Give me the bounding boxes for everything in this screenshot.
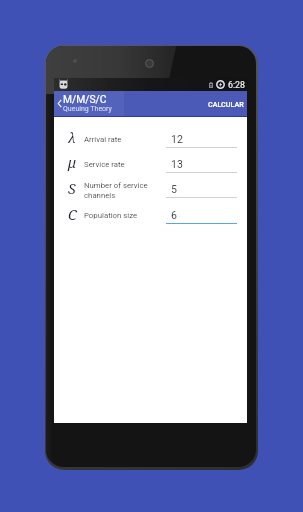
- button[interactable]: 5: [166, 183, 237, 195]
- button[interactable]: 13: [166, 158, 237, 170]
- staticText: 6:28: [228, 80, 245, 90]
- staticText: μ: [68, 153, 77, 172]
- staticText: 6: [171, 209, 177, 221]
- staticText: Population size: [84, 211, 138, 220]
- button[interactable]: λ: [63, 128, 81, 147]
- button[interactable]: Navigate up: [54, 91, 124, 117]
- staticText: Service rate: [84, 160, 125, 169]
- staticText: Arrival rate: [84, 135, 122, 144]
- button[interactable]: 6: [166, 209, 237, 221]
- staticText: S: [68, 179, 76, 198]
- staticText: Number of service channels: [84, 181, 163, 200]
- staticText: C: [68, 205, 77, 224]
- staticText: λ: [68, 128, 76, 147]
- staticText: 5: [171, 183, 177, 195]
- button[interactable]: μ: [63, 153, 81, 172]
- button[interactable]: S: [63, 179, 81, 198]
- button[interactable]: C: [63, 205, 81, 224]
- button[interactable]: 12: [166, 133, 237, 145]
- staticText: 13: [171, 158, 183, 170]
- other: Navigate up: [57, 99, 62, 108]
- staticText: CALCULAR: [208, 100, 244, 108]
- button[interactable]: CALCULAR: [202, 93, 247, 115]
- staticText: Queuing Theory: [63, 105, 112, 113]
- staticText: 12: [171, 133, 183, 145]
- staticText: M/M/S/C: [63, 93, 107, 105]
